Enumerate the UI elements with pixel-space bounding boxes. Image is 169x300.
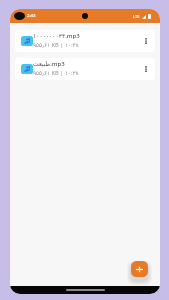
button[interactable]: More options bbox=[139, 34, 153, 48]
button[interactable]: More options bbox=[139, 62, 153, 76]
staticText: طبیعت.mp3 bbox=[33, 60, 65, 68]
staticText: ۱۰۰۰۰۰۰۰۳۴.mp3 bbox=[33, 32, 80, 40]
staticText: ۹۵۵٫۶۱ KB | ۱۰:۳۸ bbox=[33, 41, 79, 49]
button[interactable]: Add bbox=[131, 261, 148, 277]
staticText: 2:43 bbox=[27, 12, 36, 18]
button[interactable]: ۱۰۰۰۰۰۰۰۳۴.mp3 bbox=[15, 30, 155, 52]
staticText: ۹۵۵٫۶۱ KB | ۱۰:۳۸ bbox=[33, 69, 79, 77]
button[interactable]: طبیعت.mp3 bbox=[15, 58, 155, 80]
staticText: LTE bbox=[133, 14, 140, 19]
